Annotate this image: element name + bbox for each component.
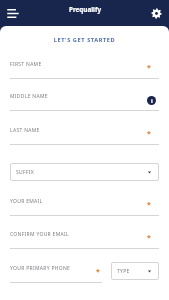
button[interactable]: FIRST NAME bbox=[10, 56, 159, 79]
staticText: Prequalify bbox=[69, 5, 101, 14]
staticText: * bbox=[147, 63, 151, 73]
staticText: CONFIRM YOUR EMAIL bbox=[10, 231, 69, 238]
staticText: TYPE bbox=[117, 268, 130, 275]
staticText: SUFFIX bbox=[16, 169, 35, 176]
staticText: i bbox=[151, 97, 153, 105]
button[interactable]: Settings bbox=[143, 0, 169, 26]
staticText: LAST NAME bbox=[10, 127, 40, 134]
button[interactable]: SUFFIX bbox=[10, 163, 159, 181]
button[interactable]: YOUR EMAIL bbox=[10, 193, 159, 216]
staticText: * bbox=[147, 129, 151, 139]
staticText: YOUR EMAIL bbox=[10, 198, 43, 205]
button[interactable]: Info bbox=[147, 96, 156, 105]
staticText: LET'S GET STARTED bbox=[0, 36, 169, 44]
staticText: YOUR PRIMARY PHONE bbox=[10, 265, 71, 272]
button[interactable]: Menu bbox=[0, 0, 26, 26]
staticText: FIRST NAME bbox=[10, 61, 42, 68]
staticText: * bbox=[96, 267, 100, 277]
button[interactable]: CONFIRM YOUR EMAIL bbox=[10, 226, 159, 249]
staticText: * bbox=[147, 200, 151, 210]
button[interactable]: LAST NAME bbox=[10, 122, 159, 145]
button[interactable]: MIDDLE NAME bbox=[10, 88, 159, 111]
button[interactable]: TYPE bbox=[111, 262, 159, 280]
button[interactable]: YOUR PRIMARY PHONE bbox=[10, 260, 102, 283]
staticText: MIDDLE NAME bbox=[10, 93, 48, 100]
staticText: * bbox=[147, 233, 151, 243]
